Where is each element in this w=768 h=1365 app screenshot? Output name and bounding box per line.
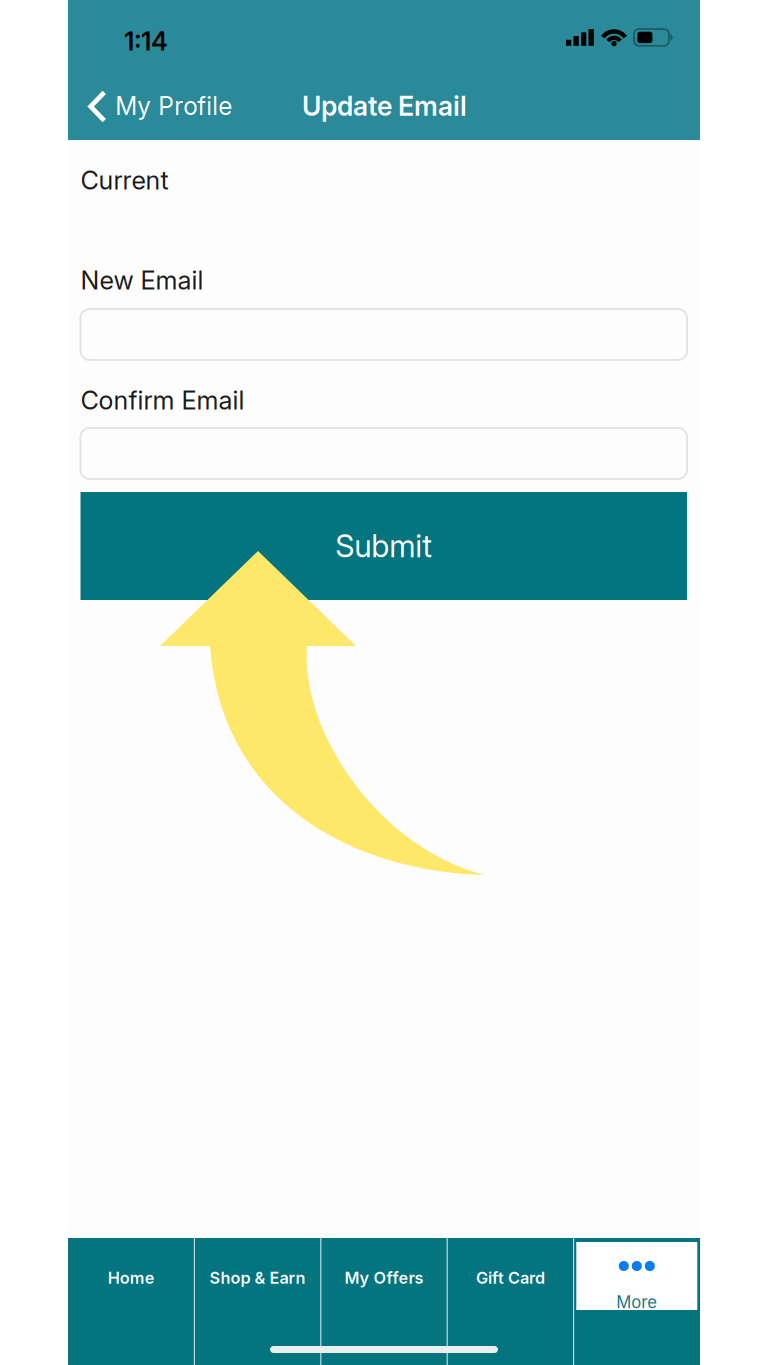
button[interactable]: New Email (80, 309, 687, 360)
button[interactable]: Gift Card (447, 1238, 574, 1365)
button[interactable]: Submit (80, 492, 687, 600)
staticText: Confirm Email (80, 385, 244, 416)
staticText: Shop & Earn (210, 1268, 306, 1288)
button[interactable]: My Offers (321, 1238, 447, 1365)
staticText: My Offers (344, 1268, 423, 1288)
staticText: Submit (335, 527, 432, 564)
staticText: Current (80, 165, 168, 196)
button[interactable]: My Profile (68, 81, 242, 132)
staticText: 1:14 (124, 26, 168, 57)
staticText: My Profile (115, 91, 232, 121)
button[interactable]: Shop & Earn (194, 1238, 321, 1365)
staticText: More (616, 1292, 657, 1312)
staticText: Gift Card (476, 1268, 545, 1288)
button[interactable]: Confirm Email (80, 428, 687, 479)
staticText: Update Email (302, 90, 467, 122)
staticText: Home (108, 1268, 155, 1288)
button[interactable]: Home (68, 1238, 194, 1365)
staticText: New Email (80, 265, 203, 296)
button[interactable]: More (574, 1238, 700, 1365)
